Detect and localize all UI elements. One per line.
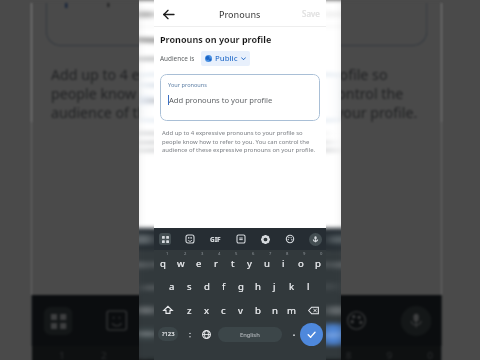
button[interactable]: q (32, 346, 73, 360)
button[interactable]: o (308, 250, 330, 274)
button[interactable]: f (215, 274, 232, 298)
button[interactable]: a (163, 274, 181, 298)
button[interactable]: g (230, 274, 252, 298)
button[interactable]: Language (201, 329, 212, 340)
button[interactable]: e (175, 250, 197, 274)
button[interactable]: j (266, 274, 283, 298)
button[interactable]: Backspace (300, 298, 326, 322)
button[interactable]: Your pronouns (139, 74, 341, 121)
button[interactable]: i (285, 250, 308, 274)
button[interactable]: Save (296, 4, 326, 23)
button[interactable]: GIF (157, 304, 197, 338)
button[interactable]: x (185, 298, 207, 322)
button[interactable]: q (139, 250, 152, 274)
button[interactable]: English (211, 327, 295, 342)
button[interactable]: d (185, 274, 207, 298)
button[interactable]: k (283, 274, 300, 298)
button[interactable]: Public (189, 51, 253, 66)
button[interactable]: x (198, 298, 215, 322)
button[interactable]: Clipboard (233, 231, 249, 247)
button[interactable]: b (249, 298, 266, 322)
button[interactable]: Back (139, 5, 158, 23)
button[interactable]: Settings (262, 231, 283, 247)
button[interactable]: n (274, 298, 296, 322)
button[interactable]: Voice input (397, 302, 434, 339)
button[interactable]: Comma (167, 329, 181, 340)
button[interactable]: w (152, 250, 175, 274)
button[interactable]: Stickers (182, 231, 198, 247)
button[interactable]: p (330, 250, 341, 274)
button[interactable]: v (232, 298, 249, 322)
button[interactable]: Voice input (307, 231, 323, 247)
button[interactable]: h (249, 274, 266, 298)
button[interactable]: s (163, 274, 185, 298)
button[interactable]: Apps (157, 231, 173, 247)
button[interactable]: GIF (197, 232, 219, 247)
button[interactable]: j (274, 274, 296, 298)
button[interactable]: r (207, 250, 224, 274)
button[interactable]: Shift (154, 298, 181, 322)
button[interactable]: z (163, 298, 185, 322)
button[interactable]: q (154, 250, 172, 274)
button[interactable]: n (266, 298, 283, 322)
button[interactable]: o (292, 250, 309, 274)
button[interactable]: v (230, 298, 252, 322)
button[interactable]: y (241, 250, 263, 274)
button[interactable]: r (197, 250, 219, 274)
button[interactable]: g (232, 274, 249, 298)
button[interactable]: Back (159, 5, 177, 23)
button[interactable]: Settings (257, 231, 273, 247)
button[interactable]: a (140, 274, 163, 298)
button[interactable]: l (300, 274, 317, 298)
button[interactable]: b (252, 298, 274, 322)
button[interactable]: k (296, 274, 318, 298)
button[interactable]: GIF (207, 232, 224, 247)
button[interactable]: Done (318, 323, 341, 346)
button[interactable]: Your pronouns (160, 74, 320, 121)
button[interactable]: c (215, 298, 232, 322)
button[interactable]: h (252, 274, 274, 298)
button[interactable]: i (319, 346, 360, 360)
button[interactable]: s (181, 274, 198, 298)
button[interactable]: e (115, 346, 156, 360)
button[interactable]: Done (300, 323, 323, 346)
button[interactable]: Voice input (327, 231, 341, 247)
button[interactable]: Public (201, 51, 250, 66)
button[interactable]: Themes (295, 231, 315, 247)
button[interactable]: Comma (184, 329, 195, 340)
button[interactable]: Themes (338, 302, 375, 339)
button[interactable]: Stickers (165, 231, 185, 247)
button[interactable]: Settings (278, 302, 316, 339)
button[interactable]: Shift (139, 298, 163, 322)
button[interactable]: Apps (139, 231, 153, 247)
button[interactable]: d (198, 274, 215, 298)
button[interactable]: Save (313, 4, 341, 23)
button[interactable]: t (224, 250, 241, 274)
button[interactable]: f (207, 274, 230, 298)
button[interactable]: i (275, 250, 292, 274)
button[interactable]: Stickers (98, 302, 136, 339)
button[interactable]: u (258, 250, 275, 274)
button[interactable]: Apps (39, 302, 76, 339)
button[interactable]: Clipboard (219, 302, 257, 339)
button[interactable]: Language (189, 329, 204, 340)
button[interactable]: Backspace (318, 298, 341, 322)
button[interactable]: ?123 (158, 327, 178, 341)
button[interactable]: Themes (282, 231, 298, 247)
button[interactable]: e (190, 250, 207, 274)
button[interactable]: c (207, 298, 230, 322)
button[interactable]: y (241, 250, 258, 274)
button[interactable]: ?123 (139, 327, 159, 341)
button[interactable]: z (181, 298, 198, 322)
button[interactable]: English (218, 327, 282, 342)
button[interactable]: l (318, 274, 340, 298)
button[interactable]: Your pronouns (46, 0, 427, 46)
button[interactable]: t (219, 250, 241, 274)
button[interactable]: w (172, 250, 190, 274)
button[interactable]: Period (290, 330, 298, 338)
